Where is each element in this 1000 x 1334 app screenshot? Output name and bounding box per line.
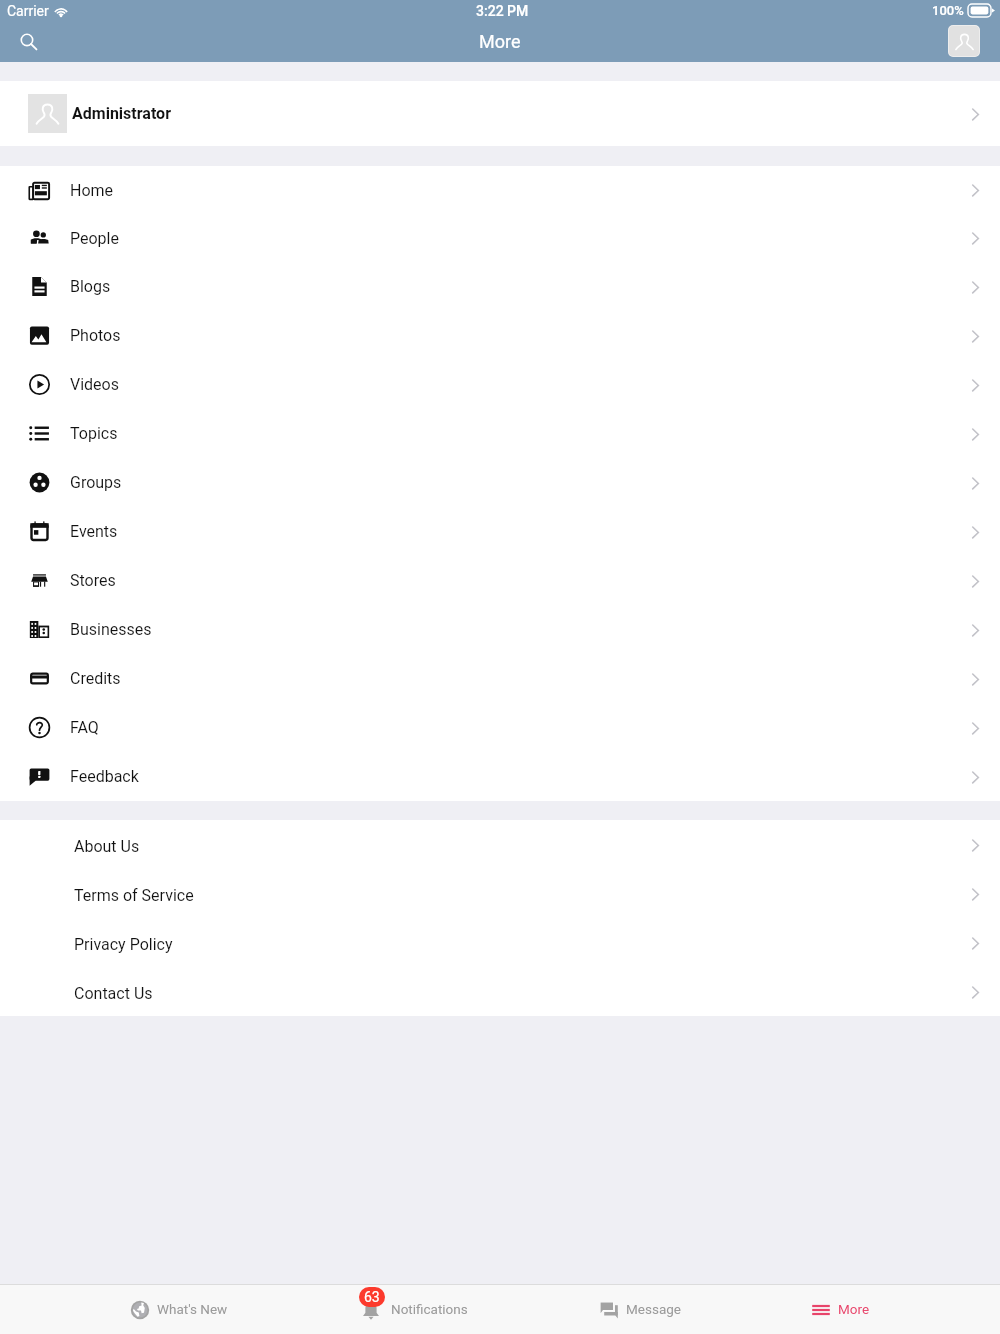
staticText: Administrator [72, 104, 171, 123]
staticText: About Us [74, 837, 140, 856]
staticText: Notifications [391, 1301, 468, 1317]
button[interactable]: Groups [0, 458, 1000, 507]
button[interactable]: People [0, 214, 1000, 262]
button[interactable]: Contact Us [0, 967, 1000, 1016]
staticText: Photos [70, 326, 121, 345]
button[interactable]: Topics [0, 409, 1000, 458]
staticText: Privacy Policy [74, 935, 173, 954]
staticText: 3:22 PM [476, 3, 529, 19]
button[interactable]: Search [12, 25, 44, 57]
staticText: More [838, 1301, 870, 1317]
staticText: Topics [70, 424, 118, 443]
button[interactable]: Privacy Policy [0, 918, 1000, 967]
staticText: 100% [932, 3, 964, 18]
button[interactable]: Blogs [0, 262, 1000, 311]
button[interactable]: Terms of Service [0, 869, 1000, 918]
button[interactable]: Feedback [0, 752, 1000, 801]
staticText: What's New [157, 1301, 228, 1317]
button[interactable]: Profile [948, 25, 980, 57]
button[interactable]: About Us [0, 820, 1000, 869]
staticText: Carrier [7, 3, 49, 19]
staticText: Message [626, 1301, 681, 1317]
staticText: Contact Us [74, 984, 153, 1003]
button[interactable]: Message [599, 1285, 681, 1334]
button[interactable]: More [811, 1285, 870, 1334]
staticText: Events [70, 522, 118, 541]
staticText: Businesses [70, 620, 152, 639]
button[interactable]: Credits [0, 654, 1000, 703]
staticText: Stores [70, 571, 116, 590]
staticText: More [479, 31, 521, 52]
button[interactable]: Administrator [0, 81, 1000, 146]
staticText: 63 [364, 1289, 380, 1305]
button[interactable]: Events [0, 507, 1000, 556]
button[interactable]: Videos [0, 360, 1000, 409]
staticText: Home [70, 181, 114, 200]
button[interactable]: Photos [0, 311, 1000, 360]
staticText: Terms of Service [74, 886, 194, 905]
button[interactable]: 63 [358, 1285, 468, 1334]
staticText: FAQ [70, 718, 99, 737]
staticText: Blogs [70, 277, 111, 296]
button[interactable]: FAQ [0, 703, 1000, 752]
staticText: Credits [70, 669, 121, 688]
staticText: Feedback [70, 767, 139, 786]
button[interactable]: What's New [130, 1285, 228, 1334]
button[interactable]: Stores [0, 556, 1000, 605]
button[interactable]: Businesses [0, 605, 1000, 654]
staticText: Videos [70, 375, 119, 394]
staticText: Groups [70, 473, 122, 492]
button[interactable]: Home [0, 166, 1000, 214]
staticText: People [70, 229, 119, 248]
